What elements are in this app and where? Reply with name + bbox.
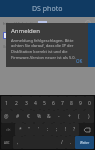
button[interactable]: 1 (1, 96, 11, 110)
staticText: @ (4, 113, 9, 120)
staticText: 5 (43, 100, 46, 107)
button[interactable]: ? (70, 123, 79, 136)
button[interactable]: Expand (0, 29, 95, 42)
staticText: =\< (6, 128, 11, 132)
staticText: : (47, 126, 49, 133)
button[interactable]: / (57, 136, 66, 149)
staticText: ? (73, 126, 76, 133)
staticText: € (27, 113, 30, 120)
button[interactable]: 2 (11, 96, 21, 110)
staticText: ! (65, 126, 67, 133)
staticText: ) (88, 113, 90, 120)
button[interactable]: Info (85, 20, 91, 26)
button[interactable]: , (13, 136, 22, 149)
button[interactable]: =\< (1, 123, 15, 136)
staticText: % (37, 113, 42, 120)
button[interactable]: 7 (58, 96, 67, 110)
staticText: - (58, 113, 60, 120)
staticText: " (28, 126, 31, 133)
button[interactable]: Weiter (75, 136, 94, 149)
button[interactable]: 9 (76, 96, 85, 110)
button[interactable]: 6 (49, 96, 58, 110)
staticText: 1 (5, 100, 8, 107)
staticText: * (19, 126, 22, 133)
button[interactable]: @ (1, 110, 12, 123)
staticText: Weiter (80, 141, 90, 145)
button[interactable]: % (34, 110, 44, 123)
staticText: 0 (88, 100, 91, 107)
staticText: , (17, 139, 19, 146)
button[interactable]: - (54, 110, 64, 123)
button[interactable]: : (43, 123, 52, 136)
button[interactable]: https://diskstation (0, 17, 95, 29)
button[interactable]: & (44, 110, 54, 123)
staticText: 4 (34, 100, 37, 107)
staticText: me (47, 21, 53, 26)
button[interactable]: ABC (1, 136, 13, 149)
button[interactable]: ; (52, 123, 61, 136)
button[interactable]: Expand (85, 33, 91, 39)
staticText: + (68, 113, 71, 120)
button[interactable]: € (23, 110, 34, 123)
button[interactable]: + (64, 110, 74, 123)
staticText: 2 (15, 100, 18, 107)
staticText: 3 (25, 100, 28, 107)
staticText: & (47, 113, 51, 120)
staticText: 6 (52, 100, 55, 107)
staticText: Anmelden (11, 27, 40, 35)
button[interactable]: 5 (40, 96, 49, 110)
staticText: Benutzername (3, 44, 28, 49)
button[interactable]: DS photo (0, 0, 95, 17)
staticText: . (70, 139, 72, 146)
staticText: 7 (61, 100, 64, 107)
staticText: Anmeldung fehlgeschlagen. Bitte achten S… (11, 38, 84, 60)
staticText: ABC (4, 141, 10, 145)
button[interactable]: . (66, 136, 75, 149)
button[interactable]: ) (84, 110, 94, 123)
staticText: / (61, 139, 63, 146)
button[interactable]: 3 (21, 96, 31, 110)
staticText: 8 (70, 100, 73, 107)
button[interactable]: ! (61, 123, 70, 136)
staticText: # (16, 113, 20, 120)
button[interactable]: 4 (31, 96, 40, 110)
button[interactable]: ' (34, 123, 43, 136)
staticText: ' (38, 126, 40, 133)
staticText: https://diskstation (3, 21, 38, 26)
staticText: ( (78, 113, 80, 120)
button[interactable]: * (15, 123, 25, 136)
button[interactable]: 8 (67, 96, 76, 110)
staticText: DS photo (32, 4, 63, 14)
button[interactable]: Benutzername (0, 42, 95, 51)
button[interactable]: 0 (85, 96, 94, 110)
button[interactable]: " (25, 123, 34, 136)
button[interactable]: Backspace (79, 123, 94, 136)
button[interactable]: ( (74, 110, 84, 123)
staticText: OK (76, 58, 83, 64)
button[interactable]: OK (74, 57, 85, 65)
staticText: ; (56, 126, 58, 133)
staticText: 9 (79, 100, 82, 107)
button[interactable]: # (12, 110, 23, 123)
